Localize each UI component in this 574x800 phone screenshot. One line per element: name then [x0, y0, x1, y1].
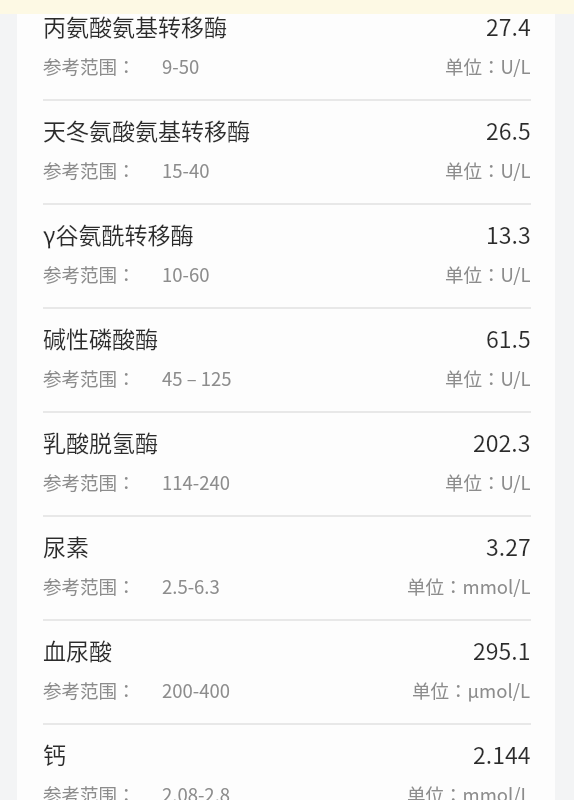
button[interactable]: 尿素: [17, 520, 555, 624]
staticText: 参考范围：: [43, 157, 136, 184]
button[interactable]: 钙: [17, 728, 555, 800]
staticText: 乳酸脱氢酶: [43, 425, 158, 458]
button[interactable]: 丙氨酸氨基转移酶: [17, 0, 555, 104]
staticText: γ谷氨酰转移酶: [43, 217, 194, 250]
staticText: 天冬氨酸氨基转移酶: [43, 113, 250, 146]
staticText: 15-40: [162, 157, 210, 184]
staticText: 单位：U/L: [445, 469, 531, 496]
staticText: 单位：U/L: [445, 53, 531, 80]
staticText: 202.3: [473, 425, 531, 458]
staticText: 单位：U/L: [445, 365, 531, 392]
staticText: 26.5: [486, 113, 531, 146]
staticText: 2.08-2.8: [162, 781, 231, 800]
staticText: 10-60: [162, 261, 210, 288]
staticText: 单位：μmol/L: [412, 677, 531, 704]
button[interactable]: γ谷氨酰转移酶: [17, 208, 555, 312]
staticText: 200-400: [162, 677, 231, 704]
staticText: 2.5-6.3: [162, 573, 220, 600]
staticText: 尿素: [43, 529, 89, 562]
button[interactable]: 碱性磷酸酶: [17, 312, 555, 416]
button[interactable]: 天冬氨酸氨基转移酶: [17, 104, 555, 208]
staticText: 参考范围：: [43, 261, 136, 288]
staticText: 2.144: [473, 737, 531, 770]
staticText: 114-240: [162, 469, 231, 496]
staticText: 13.3: [486, 217, 531, 250]
staticText: 钙: [43, 737, 66, 770]
staticText: 45 – 125: [162, 365, 232, 392]
button[interactable]: 乳酸脱氢酶: [17, 416, 555, 520]
staticText: 单位：U/L: [445, 261, 531, 288]
staticText: 9-50: [162, 53, 200, 80]
staticText: 参考范围：: [43, 573, 136, 600]
staticText: 参考范围：: [43, 677, 136, 704]
staticText: 295.1: [473, 633, 531, 666]
staticText: 碱性磷酸酶: [43, 321, 158, 354]
staticText: 血尿酸: [43, 633, 112, 666]
staticText: 单位：mmol/L: [407, 781, 531, 800]
staticText: 参考范围：: [43, 365, 136, 392]
staticText: 3.27: [486, 529, 531, 562]
staticText: 单位：mmol/L: [407, 573, 531, 600]
staticText: 单位：U/L: [445, 157, 531, 184]
staticText: 61.5: [486, 321, 531, 354]
staticText: 参考范围：: [43, 53, 136, 80]
staticText: 参考范围：: [43, 781, 136, 800]
staticText: 27.4: [486, 9, 531, 42]
button[interactable]: 血尿酸: [17, 624, 555, 728]
staticText: 丙氨酸氨基转移酶: [43, 9, 227, 42]
staticText: 参考范围：: [43, 469, 136, 496]
